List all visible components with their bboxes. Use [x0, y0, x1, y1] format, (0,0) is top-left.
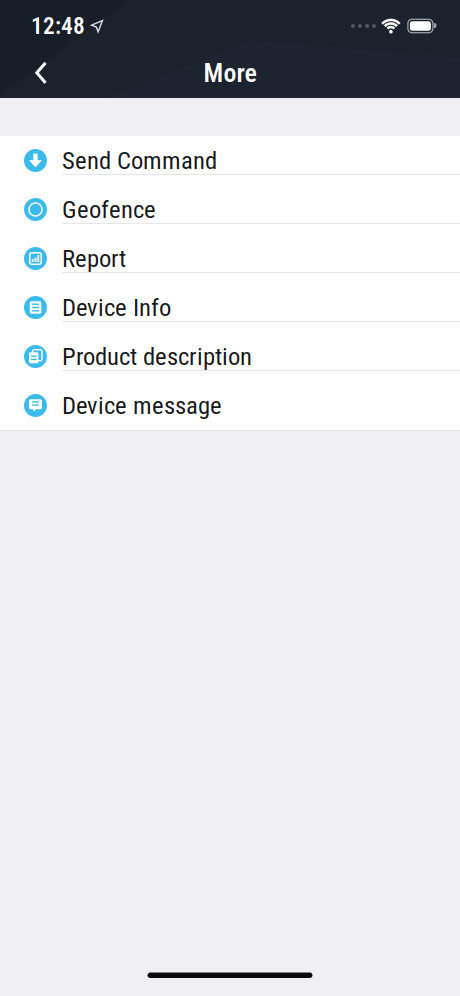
staticText: Send Command [62, 146, 217, 175]
button[interactable]: Send Command [0, 136, 460, 185]
button[interactable]: Device message [0, 381, 460, 430]
button[interactable]: Device Info [0, 283, 460, 332]
button[interactable]: Report [0, 234, 460, 283]
staticText: Product description [62, 342, 252, 371]
staticText: Report [62, 244, 126, 273]
staticText: 12:48 [31, 12, 85, 40]
button[interactable]: Geofence [0, 185, 460, 234]
staticText: More [203, 58, 256, 88]
staticText: Device Info [62, 293, 171, 322]
staticText: Geofence [62, 195, 156, 224]
button[interactable]: Product description [0, 332, 460, 381]
button[interactable] [0, 62, 67, 84]
staticText: Device message [62, 391, 222, 420]
